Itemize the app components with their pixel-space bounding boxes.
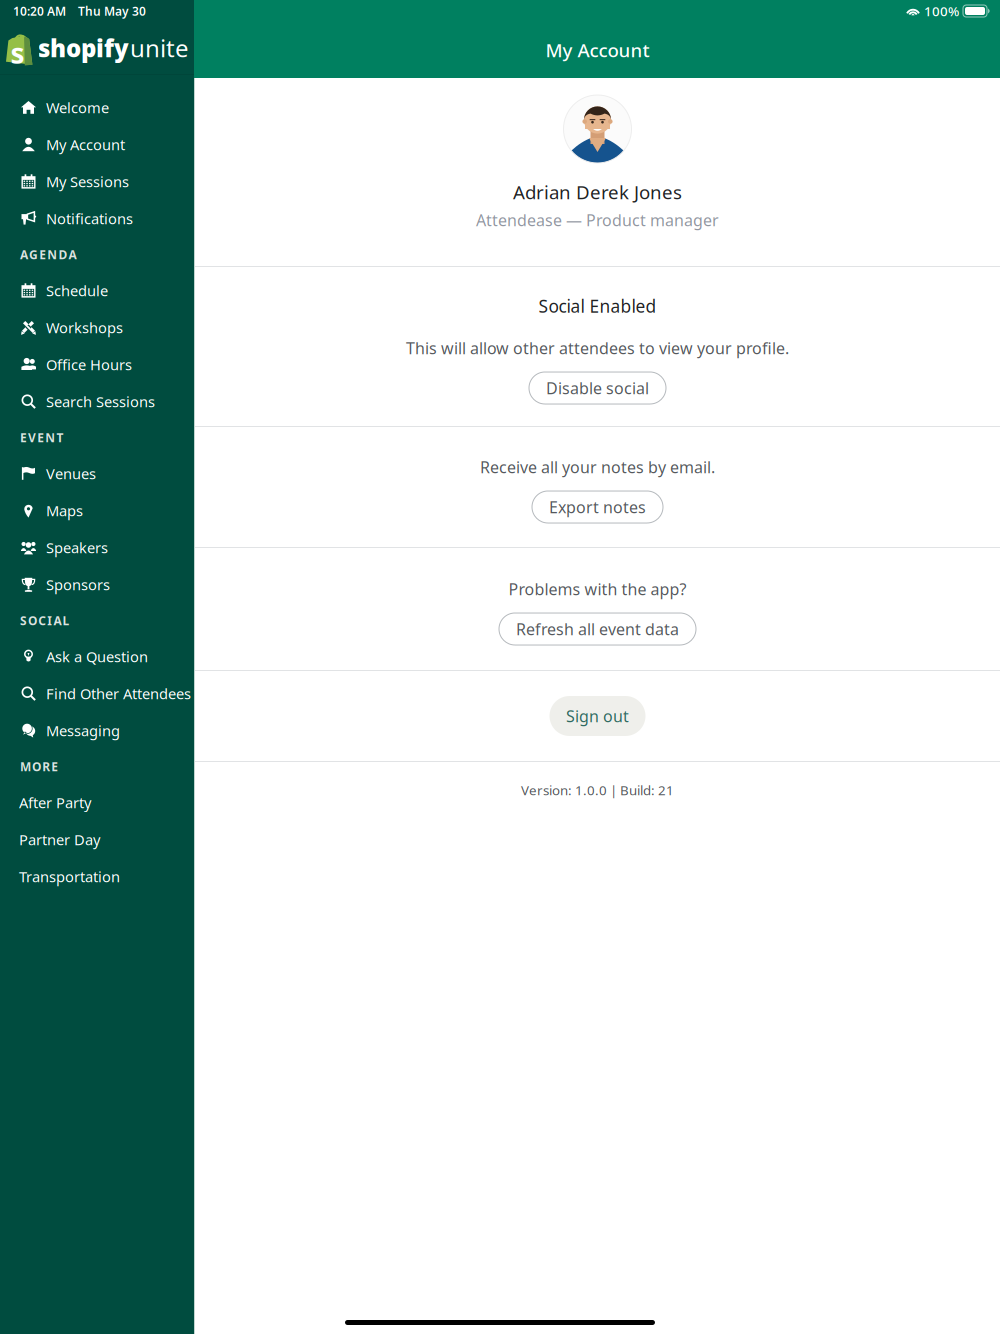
button[interactable]: Welcome xyxy=(0,89,194,126)
staticText: EVENT xyxy=(20,429,63,445)
staticText: Search Sessions xyxy=(46,392,155,411)
staticText: Sign out xyxy=(566,705,629,727)
staticText: My Account xyxy=(545,38,649,62)
staticText: MORE xyxy=(20,758,58,774)
button[interactable]: Venues xyxy=(0,455,194,492)
button[interactable]: Workshops xyxy=(0,309,194,346)
button[interactable]: Find Other Attendees xyxy=(0,675,194,712)
staticText: This will allow other attendees to view … xyxy=(406,337,789,359)
staticText: Welcome xyxy=(46,98,109,117)
staticText: Office Hours xyxy=(46,355,132,374)
staticText: Partner Day xyxy=(19,830,100,849)
staticText: Ask a Question xyxy=(46,647,148,666)
staticText: Sponsors xyxy=(46,575,110,594)
staticText: Workshops xyxy=(46,318,123,337)
staticText: Version: 1.0.0 | Build: 21 xyxy=(521,781,674,799)
button[interactable]: My Sessions xyxy=(0,163,194,200)
staticText: unite xyxy=(130,32,189,64)
staticText: Adrian Derek Jones xyxy=(513,180,682,204)
staticText: Thu May 30 xyxy=(78,3,146,19)
staticText: After Party xyxy=(19,793,91,812)
button[interactable]: Partner Day xyxy=(0,821,194,858)
staticText: Messaging xyxy=(46,721,120,740)
staticText: shopify xyxy=(38,32,129,64)
staticText: Disable social xyxy=(546,377,649,399)
button[interactable]: Transportation xyxy=(0,858,194,895)
button[interactable]: Search Sessions xyxy=(0,383,194,420)
button[interactable]: Sponsors xyxy=(0,566,194,603)
button[interactable]: Messaging xyxy=(0,712,194,749)
staticText: My Sessions xyxy=(46,172,129,191)
button[interactable]: Schedule xyxy=(0,272,194,309)
staticText: s xyxy=(10,34,24,72)
staticText: AGENDA xyxy=(20,246,76,262)
staticText: 10:20 AM xyxy=(13,3,66,19)
staticText: Refresh all event data xyxy=(516,618,679,640)
staticText: My Account xyxy=(46,135,125,154)
staticText: SOCIAL xyxy=(20,612,69,628)
staticText: Find Other Attendees xyxy=(46,684,191,703)
button[interactable]: Refresh all event data xyxy=(499,613,696,645)
staticText: Schedule xyxy=(46,281,108,300)
button[interactable]: Disable social xyxy=(529,372,666,404)
staticText: Venues xyxy=(46,464,96,483)
staticText: Receive all your notes by email. xyxy=(480,456,715,478)
button[interactable]: Export notes xyxy=(532,491,663,523)
staticText: Transportation xyxy=(19,867,120,886)
staticText: Problems with the app? xyxy=(508,578,686,600)
button[interactable]: Office Hours xyxy=(0,346,194,383)
staticText: Export notes xyxy=(549,496,646,518)
button[interactable]: My Account xyxy=(0,126,194,163)
button[interactable]: Ask a Question xyxy=(0,638,194,675)
staticText: Maps xyxy=(46,501,83,520)
button[interactable]: Speakers xyxy=(0,529,194,566)
button[interactable]: Notifications xyxy=(0,200,194,237)
staticText: Social Enabled xyxy=(538,294,656,317)
button[interactable]: Sign out xyxy=(549,696,645,736)
staticText: Attendease — Product manager xyxy=(476,209,719,231)
button[interactable]: After Party xyxy=(0,784,194,821)
staticText: 100% xyxy=(924,2,959,20)
staticText: Notifications xyxy=(46,209,133,228)
button[interactable]: Maps xyxy=(0,492,194,529)
staticText: Speakers xyxy=(46,538,108,557)
